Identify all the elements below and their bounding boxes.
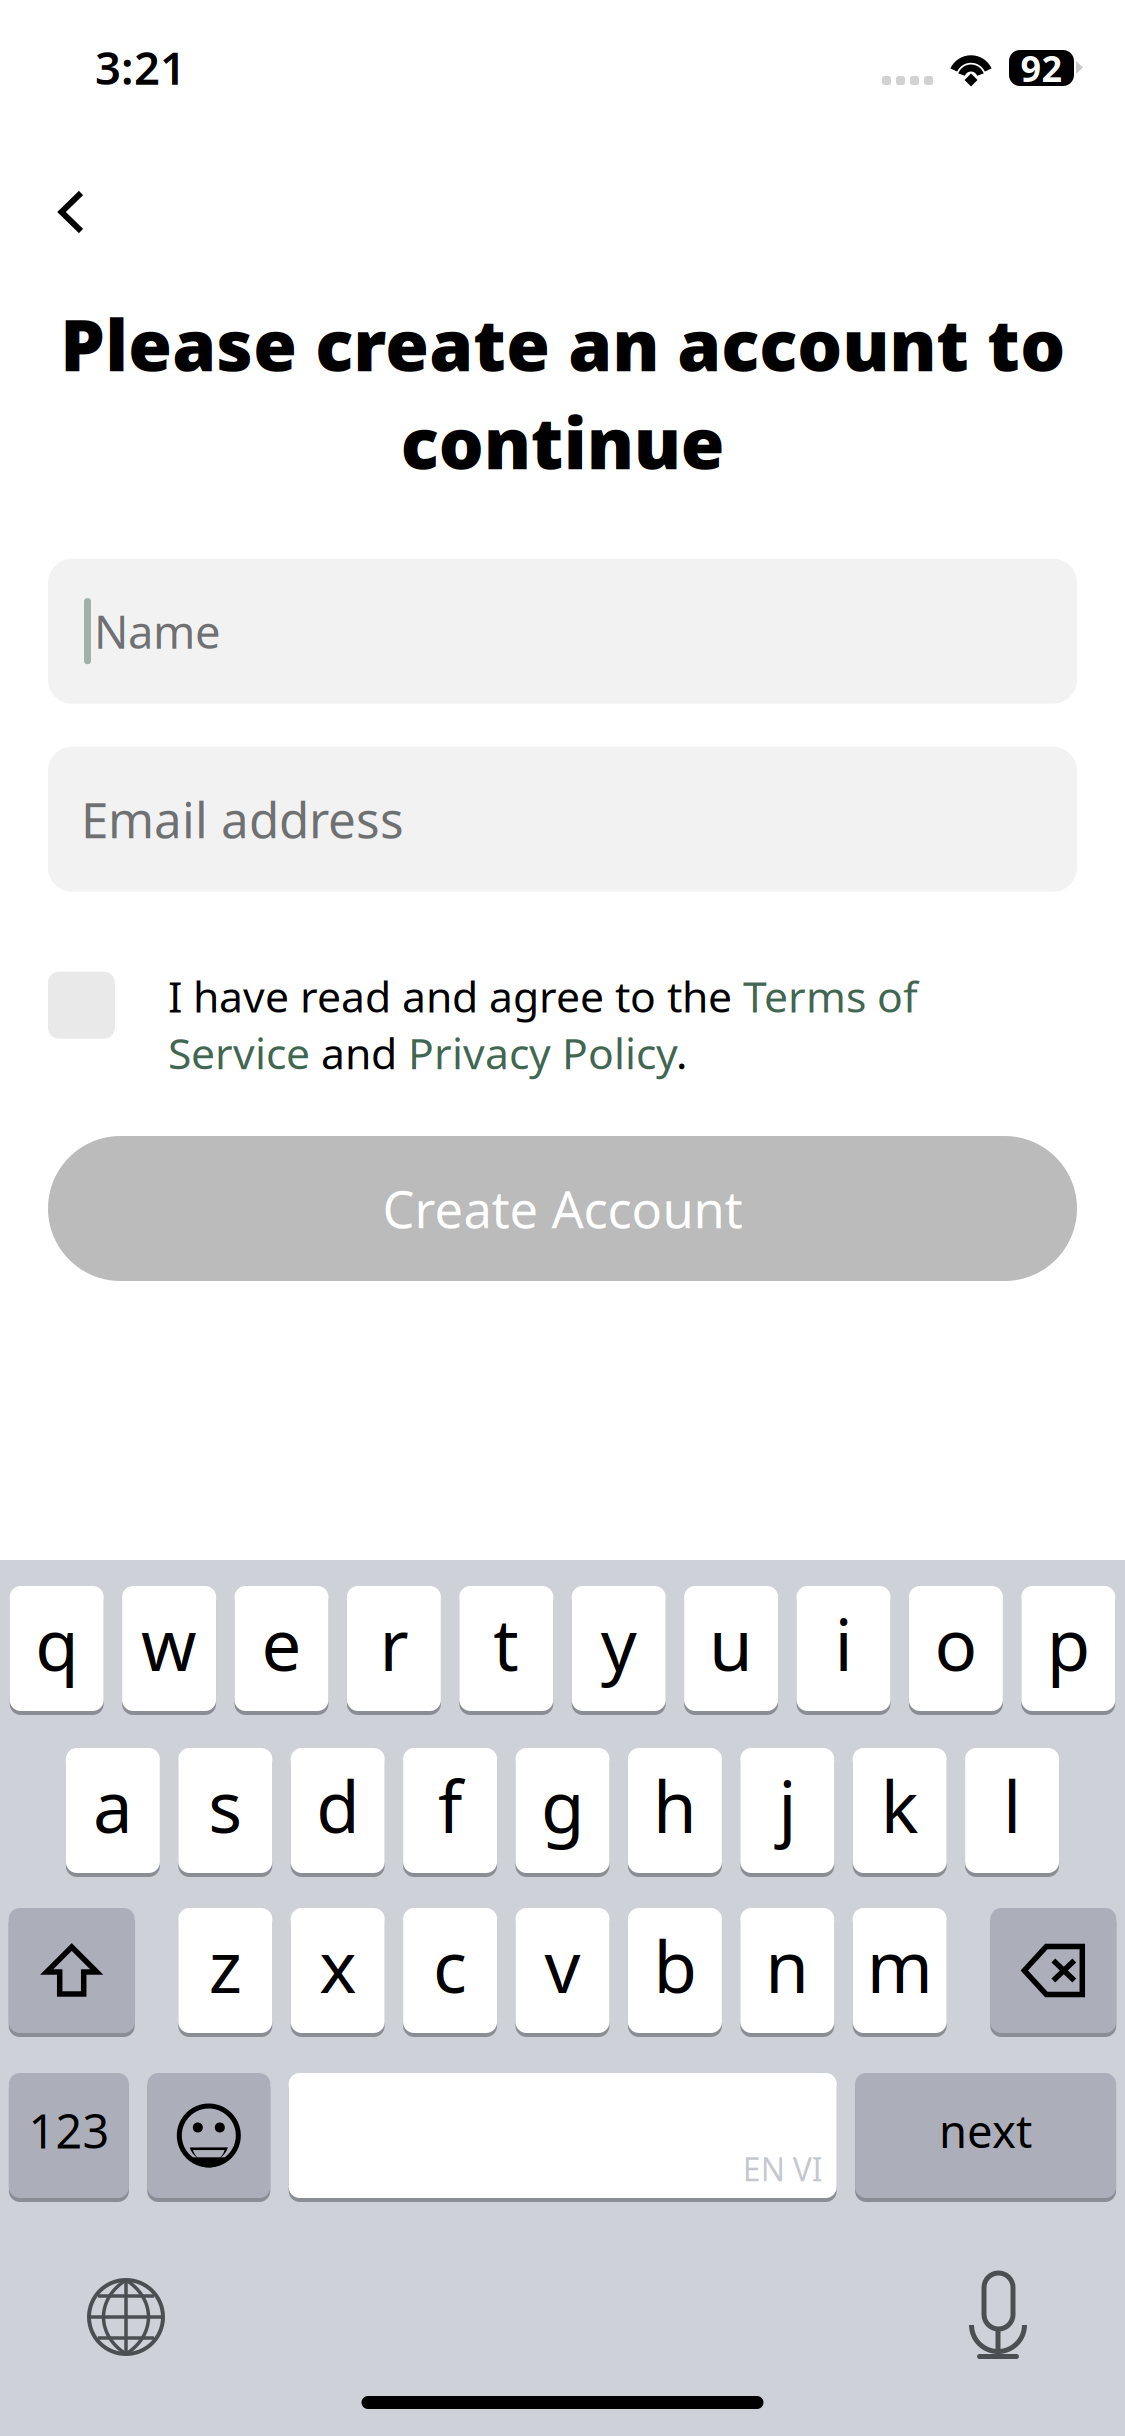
staticText: o	[934, 1597, 977, 1690]
staticText: 92	[1020, 44, 1062, 92]
button[interactable]: z	[178, 1908, 272, 2037]
button[interactable]: 123	[9, 2073, 129, 2202]
button[interactable]: u	[684, 1586, 778, 1715]
staticText: w	[141, 1597, 197, 1690]
button[interactable]: Space	[289, 2073, 837, 2202]
button[interactable]: Create Account	[48, 1136, 1077, 1281]
button[interactable]: Delete	[990, 1908, 1116, 2037]
button[interactable]: m	[853, 1908, 947, 2037]
staticText: EN VI	[743, 2147, 823, 2190]
staticText: next	[939, 2100, 1032, 2161]
staticText: s	[208, 1759, 242, 1852]
staticText: c	[433, 1919, 467, 2012]
button[interactable]: s	[178, 1748, 272, 1877]
button[interactable]: j	[740, 1748, 834, 1877]
button[interactable]: e	[234, 1586, 328, 1715]
staticText: h	[653, 1759, 697, 1852]
button[interactable]: w	[122, 1586, 216, 1715]
button[interactable]: f	[403, 1748, 497, 1877]
button[interactable]: c	[403, 1908, 497, 2037]
staticText: Name	[94, 601, 221, 661]
button[interactable]: i	[796, 1586, 890, 1715]
staticText: a	[93, 1759, 133, 1852]
button[interactable]: o	[909, 1586, 1003, 1715]
staticText: Create Account	[382, 1175, 742, 1242]
staticText: b	[653, 1919, 696, 2012]
button[interactable]: next	[855, 2073, 1116, 2202]
staticText: v	[544, 1919, 580, 2012]
staticText: 123	[28, 2099, 109, 2161]
button[interactable]: k	[853, 1748, 947, 1877]
button[interactable]: v	[515, 1908, 609, 2037]
staticText: u	[709, 1597, 753, 1690]
staticText: y	[601, 1597, 637, 1690]
button[interactable]: I have read and agree to the Terms of Se…	[48, 968, 1077, 1081]
button[interactable]: g	[515, 1748, 609, 1877]
button[interactable]: t	[459, 1586, 553, 1715]
staticText: l	[1003, 1759, 1021, 1852]
button[interactable]: Email address	[48, 747, 1077, 892]
button[interactable]: b	[628, 1908, 722, 2037]
button[interactable]: Dictation	[969, 2273, 1028, 2361]
button[interactable]: Name	[48, 559, 1077, 704]
button[interactable]: y	[572, 1586, 666, 1715]
button[interactable]: d	[291, 1748, 385, 1877]
button[interactable]: p	[1021, 1586, 1115, 1715]
staticText: m	[867, 1919, 933, 2012]
staticText: Please create an account to continue	[60, 297, 1065, 489]
staticText: d	[316, 1759, 359, 1852]
staticText: p	[1047, 1597, 1090, 1690]
button[interactable]: l	[965, 1748, 1059, 1877]
button[interactable]: x	[291, 1908, 385, 2037]
button[interactable]: a	[66, 1748, 160, 1877]
button[interactable]: Next keyboard	[87, 2278, 165, 2356]
button[interactable]: Shift	[9, 1908, 135, 2037]
staticText: e	[261, 1597, 301, 1690]
staticText: x	[319, 1919, 356, 2012]
button[interactable]: Back	[0, 148, 120, 240]
staticText: q	[35, 1597, 78, 1690]
button[interactable]: n	[740, 1908, 834, 2037]
staticText: g	[541, 1759, 584, 1852]
staticText: n	[765, 1919, 809, 2012]
staticText: z	[209, 1919, 242, 2012]
staticText: Email address	[81, 786, 404, 852]
staticText: f	[438, 1759, 462, 1852]
staticText: j	[778, 1759, 796, 1852]
button[interactable]: q	[10, 1586, 104, 1715]
staticText: 3:21	[95, 37, 186, 97]
button[interactable]: Emoji	[147, 2073, 270, 2202]
staticText: i	[834, 1597, 852, 1690]
staticText: I have read and agree to the Terms of Se…	[168, 968, 918, 1081]
staticText: k	[881, 1759, 919, 1852]
button[interactable]: h	[628, 1748, 722, 1877]
staticText: r	[379, 1597, 408, 1690]
staticText: t	[493, 1597, 519, 1690]
button[interactable]: r	[347, 1586, 441, 1715]
